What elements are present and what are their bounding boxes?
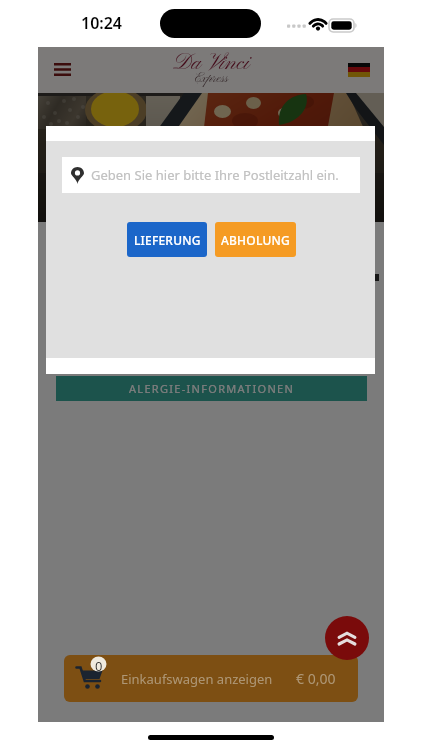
button[interactable]: ALERGIE-INFORMATIONEN (56, 376, 367, 401)
button[interactable]: LIEFERUNG (127, 222, 207, 257)
staticText: 0 (95, 657, 103, 672)
staticText: Geben Sie hier bitte Ihre Postleitzahl e… (91, 166, 339, 184)
staticText: ALERGIE-INFORMATIONEN (129, 381, 295, 396)
button[interactable]: Scroll to top (325, 616, 369, 660)
staticText: ABHOLUNG (221, 232, 290, 248)
staticText: Einkaufswagen anzeigen (121, 670, 273, 688)
button[interactable]: Geben Sie hier bitte Ihre Postleitzahl e… (62, 157, 360, 193)
staticText: € 0,00 (296, 669, 336, 688)
staticText: LIEFERUNG (134, 232, 201, 248)
button[interactable]: Language (348, 63, 370, 77)
staticText: Da Vinci (173, 49, 250, 78)
button[interactable]: ABHOLUNG (215, 222, 296, 257)
button[interactable]: Menu (54, 63, 71, 76)
staticText: 10:24 (81, 12, 123, 34)
staticText: Express (195, 71, 229, 87)
button[interactable]: 0 (64, 655, 358, 702)
